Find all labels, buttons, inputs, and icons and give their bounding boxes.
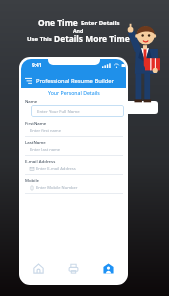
staticText: Mobile — [25, 177, 40, 183]
staticText: 9:41 — [32, 62, 42, 69]
button[interactable]: Enter E-mail Address — [25, 164, 123, 174]
staticText: Details More Time — [54, 33, 130, 44]
button[interactable]: Enter first name — [25, 126, 123, 136]
button[interactable]: Enter Your Full Name — [31, 105, 124, 117]
button[interactable]: Menu — [23, 75, 34, 86]
staticText: Your Personal Details — [48, 89, 100, 96]
button[interactable]: Documents — [56, 257, 91, 280]
staticText: And — [73, 27, 84, 34]
staticText: Enter E-mail Address — [36, 166, 76, 172]
staticText: Enter Mobile Number — [36, 185, 78, 191]
staticText: Enter first name — [30, 128, 61, 134]
staticText: One Time — [38, 17, 81, 28]
staticText: Enter last name — [30, 147, 61, 153]
button[interactable]: Home — [21, 257, 56, 280]
staticText: Enter Your Full Name — [37, 108, 80, 114]
staticText: Use This — [27, 35, 54, 43]
button[interactable]: Profile — [91, 257, 126, 280]
staticText: Enter Details — [81, 19, 120, 27]
staticText: Professional Resume Builder — [36, 77, 114, 85]
staticText: FirstName — [25, 120, 47, 126]
staticText: Name — [25, 98, 38, 104]
staticText: E-mail Address — [25, 158, 56, 164]
staticText: LastName — [25, 139, 46, 145]
button[interactable]: Enter Mobile Number — [25, 183, 123, 193]
button[interactable]: Enter last name — [25, 145, 123, 155]
